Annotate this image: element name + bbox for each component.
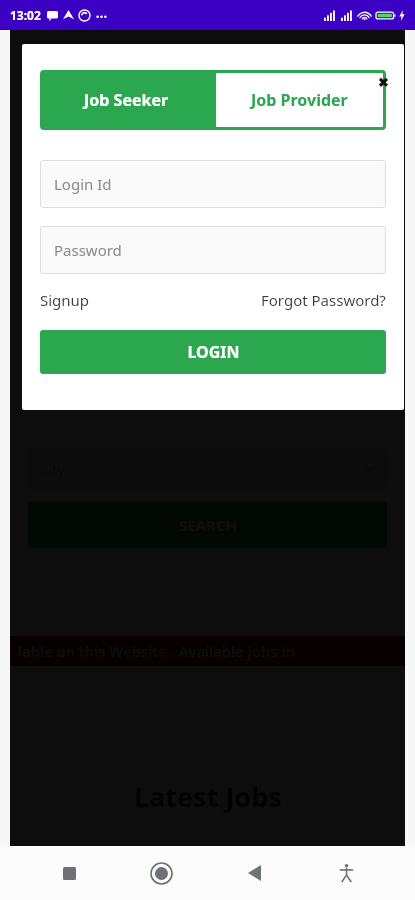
staticText: Job Seeker: [84, 89, 169, 111]
button[interactable]: Signup: [40, 290, 90, 310]
staticText: Forgot Password?: [261, 290, 386, 310]
staticText: Login Id: [54, 174, 112, 194]
button[interactable]: Back: [231, 850, 277, 896]
staticText: SEARCH: [179, 515, 237, 535]
staticText: ✖: [378, 75, 389, 90]
button[interactable]: Job Provider: [216, 73, 383, 127]
button[interactable]: Password: [40, 226, 386, 274]
button[interactable]: Accessibility: [323, 850, 369, 896]
staticText: Password: [54, 240, 122, 260]
button[interactable]: Recent apps: [46, 850, 92, 896]
button[interactable]: LOGIN: [40, 330, 386, 374]
staticText: Job Provider: [251, 89, 348, 111]
staticText: Latest Jobs: [134, 778, 282, 815]
staticText: lable on this Website . Available Jobs i…: [18, 641, 295, 661]
button[interactable]: Job Seeker: [40, 70, 213, 130]
staticText: Signup: [40, 290, 90, 310]
button[interactable]: Forgot Password?: [261, 290, 386, 310]
button[interactable]: Close: [372, 71, 394, 93]
button[interactable]: Login Id: [40, 160, 386, 208]
staticText: LOGIN: [187, 341, 240, 363]
button[interactable]: Home: [138, 850, 184, 896]
staticText: 13:02: [10, 7, 41, 23]
